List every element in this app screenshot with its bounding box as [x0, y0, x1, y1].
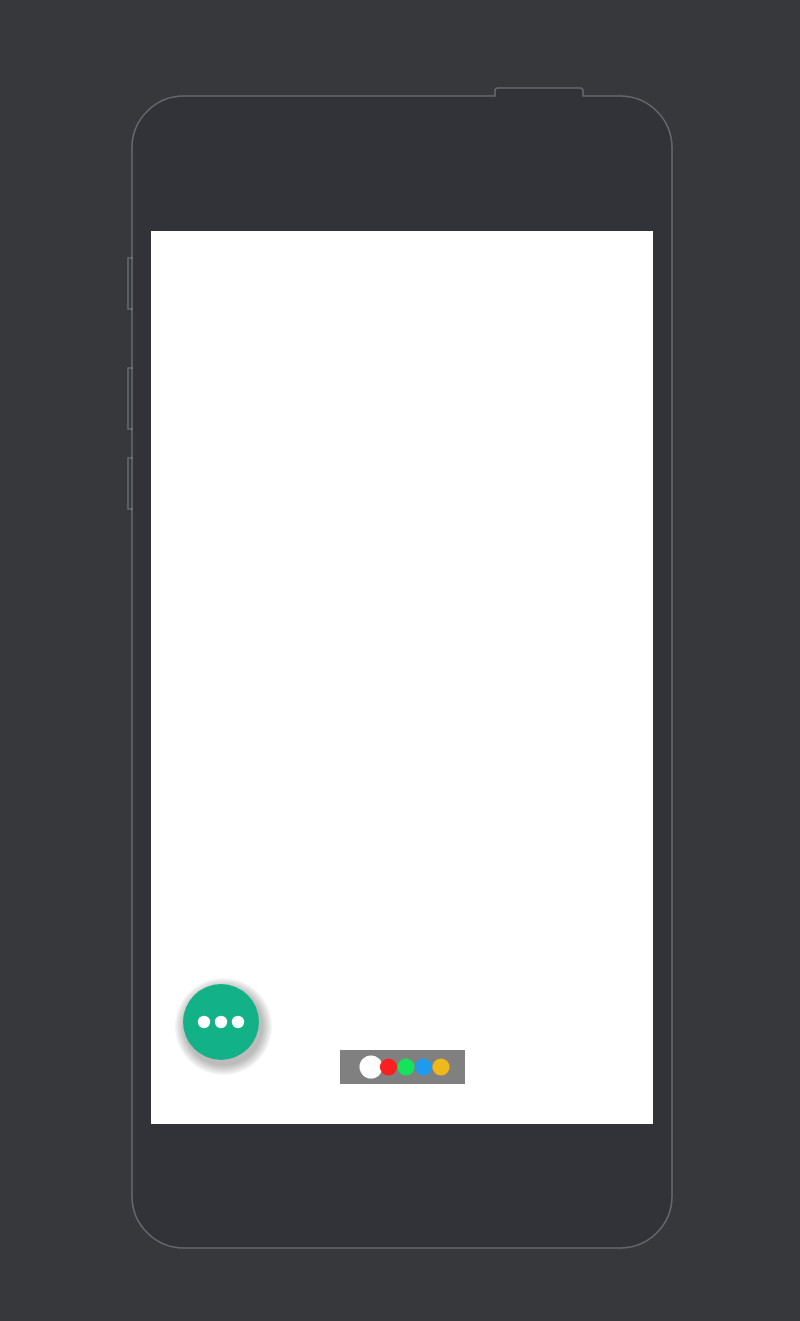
button[interactable]: Blue colour	[415, 1058, 432, 1075]
button[interactable]: Red colour	[380, 1058, 397, 1075]
button[interactable]: More options	[183, 984, 259, 1060]
button[interactable]: Yellow colour	[432, 1058, 449, 1075]
button[interactable]: Green colour	[397, 1058, 414, 1075]
button[interactable]: White colour	[360, 1056, 383, 1079]
